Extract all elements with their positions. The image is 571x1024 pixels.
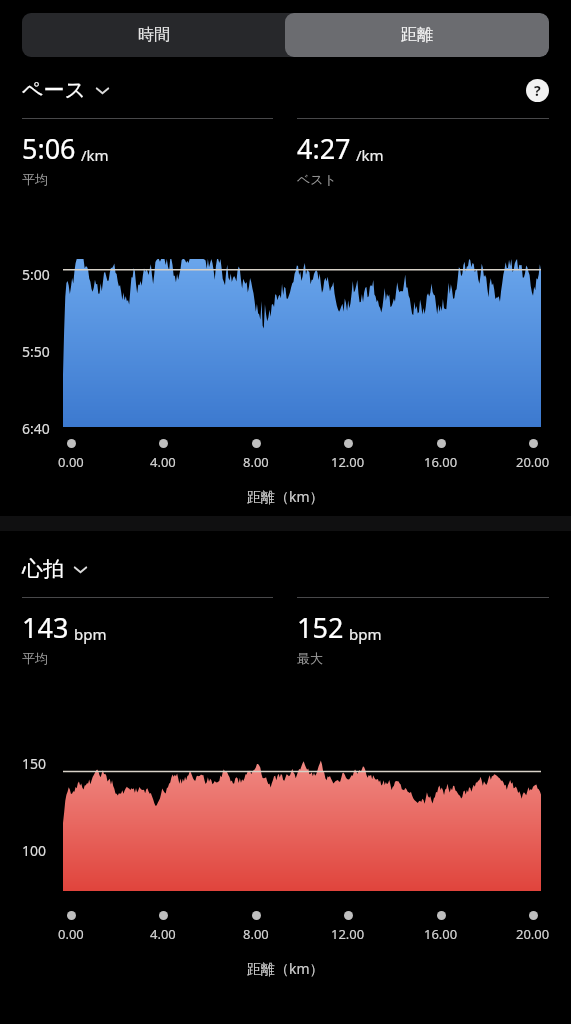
staticText: 0.00	[58, 453, 84, 471]
button[interactable]: 距離	[285, 13, 549, 57]
staticText: 平均	[22, 650, 48, 666]
staticText: 時間	[138, 25, 170, 45]
staticText: 最大	[297, 650, 323, 666]
staticText: 6:40	[22, 419, 50, 438]
staticText: /km	[356, 145, 384, 165]
staticText: 20.00	[516, 453, 550, 471]
staticText: 8.00	[243, 453, 269, 471]
staticText: 16.00	[424, 925, 458, 943]
staticText: 20.00	[516, 925, 550, 943]
staticText: /km	[81, 145, 109, 165]
button[interactable]: Help	[525, 78, 549, 102]
staticText: 12.00	[331, 453, 365, 471]
staticText: 12.00	[331, 925, 365, 943]
staticText: 0.00	[58, 925, 84, 943]
staticText: 4:27	[297, 130, 351, 167]
button[interactable]: 心拍	[22, 556, 88, 582]
staticText: 8.00	[243, 925, 269, 943]
staticText: ペース	[22, 77, 86, 103]
staticText: bpm	[74, 624, 107, 644]
staticText: 5:00	[22, 265, 50, 284]
staticText: 心拍	[22, 556, 64, 582]
button[interactable]: ペース	[22, 77, 110, 103]
staticText: 平均	[22, 171, 48, 187]
staticText: 100	[22, 841, 47, 860]
staticText: 5:50	[22, 342, 50, 361]
staticText: bpm	[349, 624, 382, 644]
staticText: 4.00	[150, 925, 176, 943]
staticText: 4.00	[150, 453, 176, 471]
staticText: ベスト	[297, 171, 337, 187]
button[interactable]: 時間	[22, 13, 285, 57]
staticText: 距離（km）	[247, 487, 324, 506]
staticText: 距離	[401, 25, 433, 45]
staticText: 16.00	[424, 453, 458, 471]
staticText: ?	[534, 81, 541, 100]
staticText: 143	[22, 609, 69, 646]
staticText: 5:06	[22, 130, 76, 167]
staticText: 150	[22, 754, 47, 773]
staticText: 距離（km）	[247, 959, 324, 978]
staticText: 152	[297, 609, 344, 646]
